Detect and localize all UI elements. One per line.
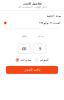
staticText: السبت ١٢ يوليو ٢٠٢٥ [38,21,60,24]
staticText: مرة واحدة [20,58,30,61]
staticText: تفاصيل الحجز [22,2,41,5]
staticText: أسبوعي [39,58,48,61]
button[interactable]: تأكيد الحجز [6,66,58,74]
staticText: اختر الوقت المناسب لك [17,5,46,8]
staticText: دقيقة [21,34,26,37]
button[interactable]: مرة واحدة [16,58,30,61]
staticText: موعد الجلسة [46,14,60,17]
button[interactable]: أسبوعي [35,58,48,61]
staticText: 9 [39,46,41,51]
staticText: 00 [22,46,26,51]
staticText: ساعة [37,34,43,37]
staticText: تأكيد الحجز [24,68,40,71]
